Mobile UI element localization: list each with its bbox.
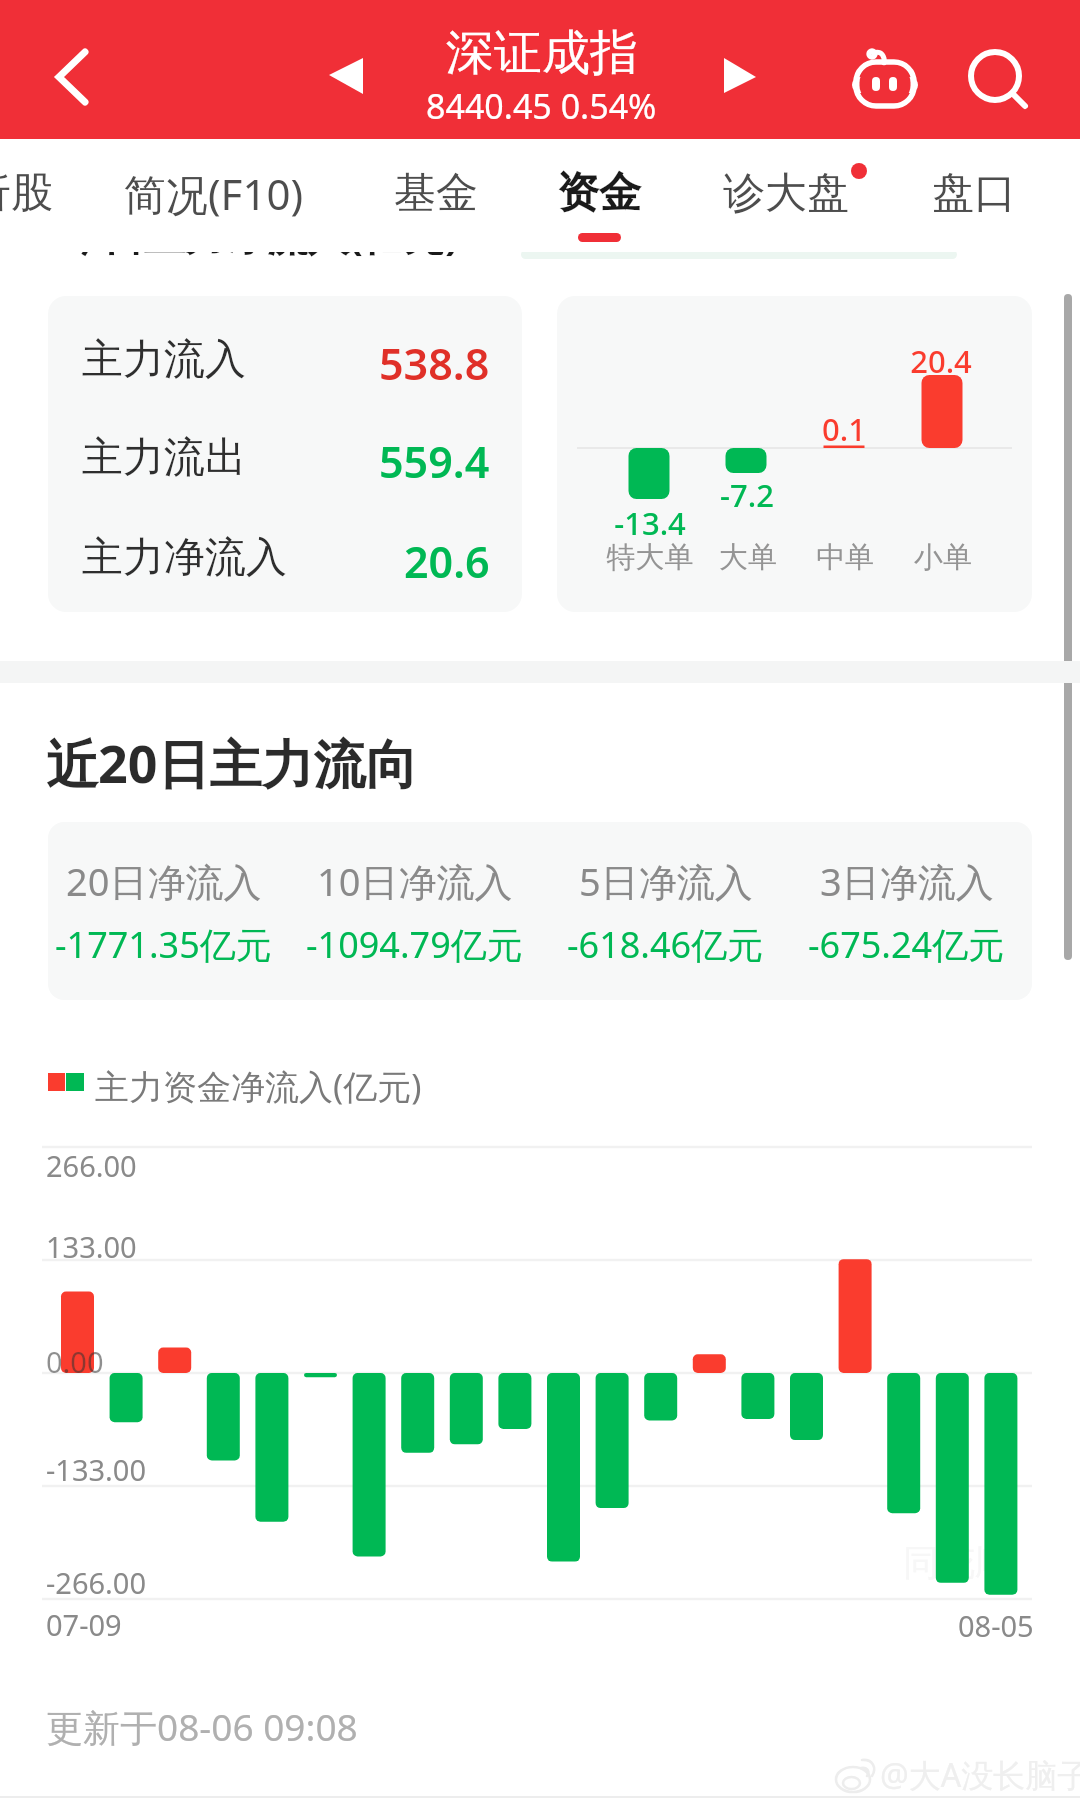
staticText: 0.00 <box>46 1342 104 1381</box>
button[interactable]: 盘口 <box>932 139 1016 252</box>
staticText: 同花顺 <box>903 1540 1011 1585</box>
staticText: 今日主力净流入(亿元) <box>62 206 459 262</box>
staticText: 小单 <box>853 539 1032 576</box>
button[interactable]: 20日净流入 <box>48 822 1032 1000</box>
button[interactable]: Next stock <box>704 45 768 109</box>
staticText: 559.4 <box>379 432 490 484</box>
button[interactable]: 20.4 <box>557 296 1032 612</box>
staticText: 08-05 <box>958 1606 1034 1645</box>
staticText: -1771.35亿元 <box>55 920 272 969</box>
staticText: 主力流出 <box>82 432 246 484</box>
staticText: 0.1 <box>754 408 934 450</box>
staticText: -266.00 <box>46 1563 147 1602</box>
button[interactable]: AI assistant <box>835 33 935 133</box>
button[interactable]: Back <box>22 27 122 127</box>
staticText: 20.4 <box>851 340 1031 382</box>
staticText: 07-09 <box>46 1605 122 1644</box>
staticText: 更新于08-06 09:08 <box>46 1701 358 1752</box>
staticText: 8440.45 0.54% <box>426 83 657 129</box>
button[interactable]: Search <box>945 26 1045 126</box>
staticText: 538.8 <box>379 334 490 386</box>
staticText: 深证成指 <box>446 23 638 83</box>
button[interactable]: 折股 <box>0 139 53 252</box>
button[interactable]: Previous stock <box>309 45 373 109</box>
button[interactable]: 简况(F10) <box>124 139 304 252</box>
staticText: 特大单 <box>560 539 740 576</box>
staticText: 近20日主力流向 <box>46 727 418 798</box>
staticText: 主力流入 <box>82 334 246 386</box>
staticText: 盘口 <box>932 167 1016 220</box>
staticText: -675.24亿元 <box>808 920 1005 969</box>
staticText: 266.00 <box>46 1146 137 1185</box>
staticText: 诊大盘 <box>723 167 849 220</box>
button[interactable]: 资金 <box>557 139 641 252</box>
staticText: 基金 <box>394 167 478 220</box>
staticText: 中单 <box>755 539 935 576</box>
staticText: 折股 <box>0 167 53 220</box>
staticText: 主力资金净流入(亿元) <box>95 1063 422 1109</box>
staticText: -133.00 <box>46 1450 147 1489</box>
staticText: 133.00 <box>46 1227 137 1266</box>
staticText: 20.6 <box>404 532 490 584</box>
button[interactable]: 基金 <box>394 139 478 252</box>
staticText: -13.4 <box>560 502 740 544</box>
staticText: 5日净流入 <box>579 855 753 907</box>
staticText: @大A没长脑子 <box>880 1753 1080 1797</box>
button[interactable]: 诊大盘 <box>723 139 849 252</box>
staticText: 大单 <box>658 539 838 576</box>
staticText: -7.2 <box>657 474 837 516</box>
staticText: 10日净流入 <box>317 855 513 907</box>
staticText: 主力净流入 <box>82 532 287 584</box>
staticText: 简况(F10) <box>124 165 304 222</box>
staticText: 3日净流入 <box>820 855 994 907</box>
staticText: -1094.79亿元 <box>306 920 523 969</box>
staticText: 20日净流入 <box>66 855 262 907</box>
staticText: 资金 <box>557 167 641 220</box>
staticText: -618.46亿元 <box>567 920 764 969</box>
button[interactable]: 主力流入 <box>48 296 522 612</box>
